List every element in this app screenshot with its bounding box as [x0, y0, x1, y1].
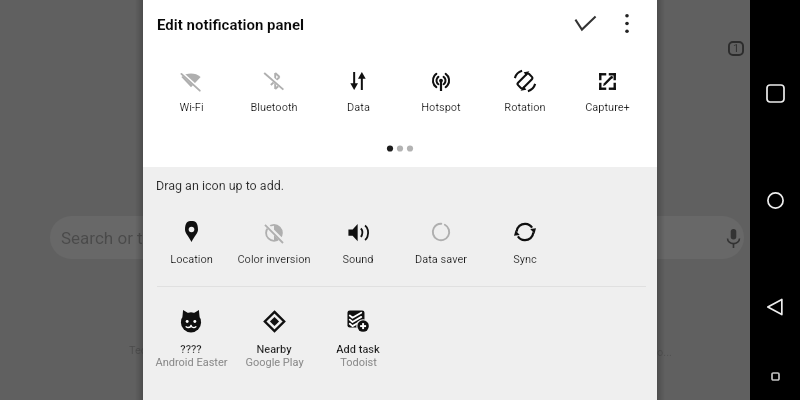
staticText: Google Play: [245, 356, 304, 369]
staticText: Data: [347, 101, 370, 114]
staticText: Android Easter: [155, 356, 228, 369]
button[interactable]: Data saver: [401, 212, 481, 271]
staticText: Drag an icon up to add.: [156, 178, 285, 193]
button[interactable]: Search or type URL: [50, 216, 744, 259]
staticText: Sync: [513, 253, 537, 266]
staticText: Capture+: [585, 101, 630, 114]
staticText: Location: [170, 253, 213, 266]
button[interactable]: Bluetooth: [234, 61, 314, 119]
button[interactable]: Hotspot: [401, 61, 481, 119]
button[interactable]: Hide navigation bar: [750, 366, 800, 386]
button[interactable]: Add task: [316, 305, 400, 371]
button[interactable]: ????: [149, 305, 233, 371]
button[interactable]: Home: [750, 177, 800, 223]
staticText: Color inversion: [237, 253, 311, 266]
button[interactable]: Nearby: [232, 305, 316, 371]
staticText: Bluetooth: [250, 101, 298, 114]
staticText: o...: [657, 346, 672, 359]
staticText: Search or type URL: [61, 228, 205, 248]
button[interactable]: Capture+: [567, 61, 647, 119]
staticText: Tech news: [129, 344, 182, 357]
button[interactable]: Data: [318, 61, 398, 119]
button[interactable]: Edit notification panel: [143, 0, 657, 50]
staticText: Todoist: [340, 356, 377, 369]
staticText: Add task: [336, 343, 380, 356]
button[interactable]: Sync: [485, 212, 565, 271]
button[interactable]: Location: [151, 212, 231, 271]
button[interactable]: Recents: [750, 70, 800, 116]
button[interactable]: Back: [750, 284, 800, 330]
button[interactable]: Open tabs: [728, 41, 744, 56]
staticText: Edit notification panel: [157, 16, 305, 34]
button[interactable]: Done: [566, 4, 604, 42]
staticText: Data saver: [415, 253, 467, 266]
button[interactable]: Rotation: [485, 61, 565, 119]
staticText: Sound: [342, 253, 374, 266]
staticText: Rotation: [504, 101, 546, 114]
button[interactable]: Wi-Fi: [151, 61, 231, 119]
staticText: Nearby: [256, 343, 292, 356]
button[interactable]: More options: [608, 4, 646, 42]
staticText: 1: [733, 42, 740, 55]
button[interactable]: Sound: [318, 212, 398, 271]
button[interactable]: Color inversion: [234, 212, 314, 271]
staticText: ????: [180, 343, 202, 356]
staticText: Hotspot: [421, 101, 461, 114]
staticText: Wi-Fi: [179, 101, 204, 114]
